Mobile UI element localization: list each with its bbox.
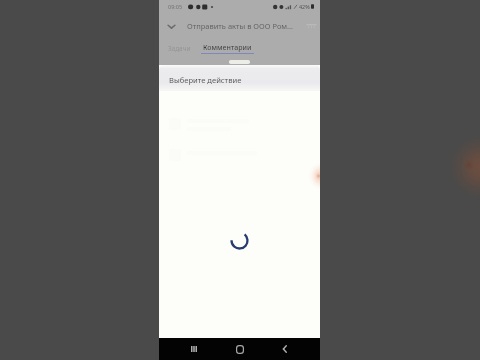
button[interactable]: Задачи <box>159 39 200 65</box>
staticText: 09:05 <box>168 3 183 10</box>
staticText: Задачи <box>168 44 191 53</box>
staticText: 42% <box>299 3 310 10</box>
button[interactable]: Домой <box>230 339 250 359</box>
button[interactable]: Последние приложения <box>184 339 204 359</box>
staticText: Отправить акты в ООО Ром… <box>187 21 303 31</box>
staticText: Комментарии <box>203 43 252 53</box>
button[interactable]: Свернуть <box>159 14 183 38</box>
staticText: Выберите действие <box>169 75 242 85</box>
button[interactable]: Комментарии <box>200 39 254 65</box>
button[interactable]: Назад <box>275 339 295 359</box>
